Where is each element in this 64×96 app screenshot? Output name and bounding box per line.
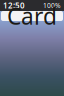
- staticText: Card: [7, 1, 57, 31]
- staticText: 100%: [43, 1, 61, 10]
- staticText: 12:50: [3, 0, 25, 11]
